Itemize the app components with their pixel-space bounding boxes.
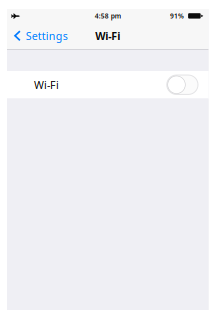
button[interactable]: Settings xyxy=(7,24,72,48)
staticText: Wi-Fi xyxy=(95,29,120,43)
staticText: Settings xyxy=(26,29,68,43)
staticText: Wi-Fi xyxy=(34,78,59,92)
staticText: 4:58 pm xyxy=(95,11,121,20)
button[interactable]: Wi-Fi xyxy=(7,71,208,98)
staticText: 91% xyxy=(170,11,184,20)
